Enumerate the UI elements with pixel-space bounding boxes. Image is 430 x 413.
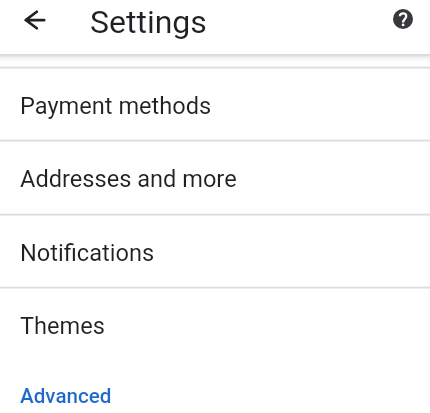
staticText: Themes: [20, 312, 105, 340]
staticText: Advanced: [20, 384, 112, 408]
staticText: Addresses and more: [20, 165, 237, 193]
staticText: Payment methods: [20, 92, 212, 120]
staticText: Settings: [90, 3, 207, 41]
button[interactable]: Payment methods: [0, 68, 430, 141]
button[interactable]: Help: [383, 0, 422, 38]
button[interactable]: Notifications: [0, 215, 430, 288]
button[interactable]: Advanced: [0, 361, 430, 413]
button[interactable]: Themes: [0, 288, 430, 361]
button[interactable]: Addresses and more: [0, 141, 430, 214]
button[interactable]: Navigate up: [11, 0, 59, 44]
staticText: Notifications: [20, 239, 155, 267]
